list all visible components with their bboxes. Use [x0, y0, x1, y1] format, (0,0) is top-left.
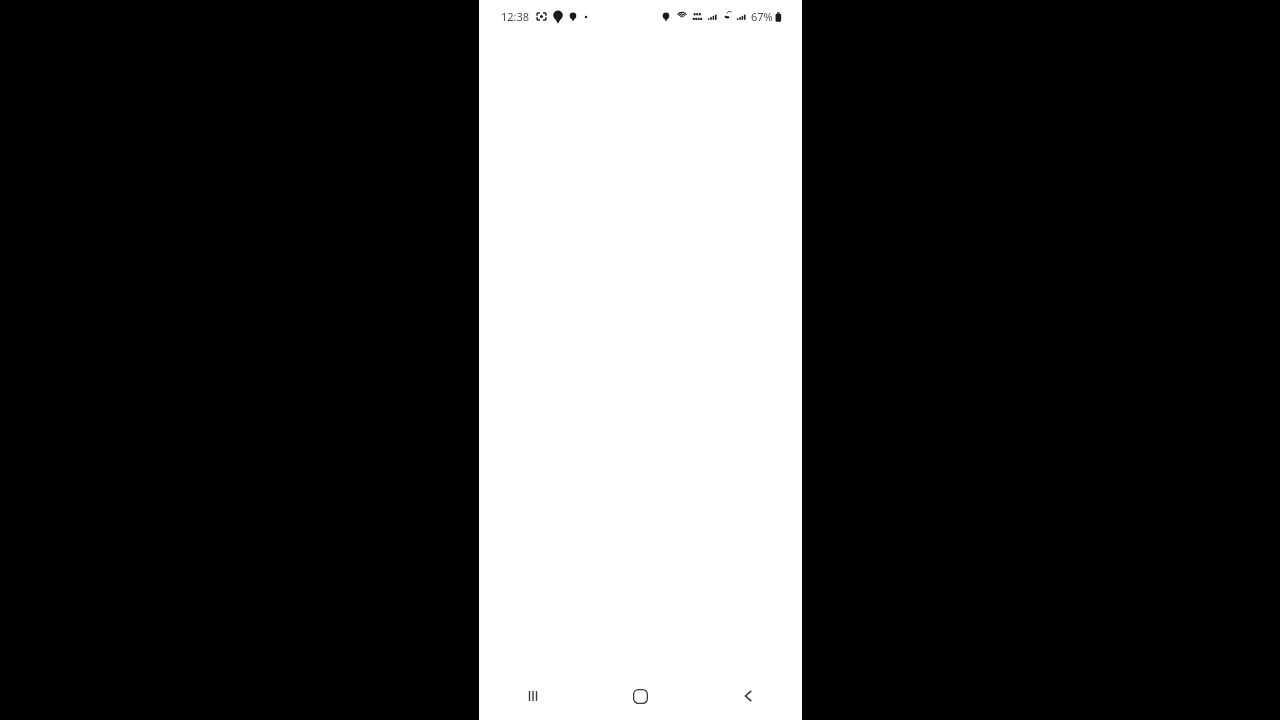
staticText: 67% — [751, 9, 773, 24]
staticText: 12:38 — [501, 9, 530, 24]
button[interactable]: Back — [694, 672, 802, 720]
button[interactable]: Home — [586, 672, 694, 720]
button[interactable]: Recents — [479, 672, 586, 720]
